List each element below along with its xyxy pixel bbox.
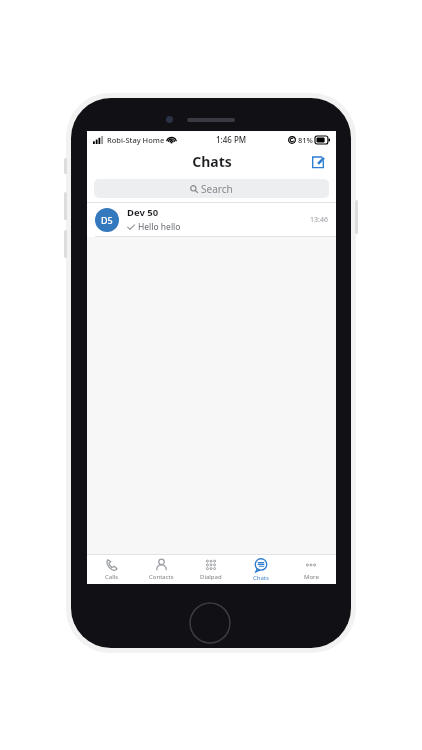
staticText: Calls xyxy=(105,573,119,581)
button[interactable]: Contacts xyxy=(136,555,186,584)
staticText: 1:46 PM xyxy=(216,134,247,145)
staticText: Hello hello xyxy=(138,221,181,233)
staticText: Contacts xyxy=(149,573,174,581)
button[interactable]: Calls xyxy=(87,555,136,584)
other: Home xyxy=(189,602,231,644)
button[interactable]: Chats xyxy=(236,555,286,584)
staticText: Chats xyxy=(253,574,269,582)
staticText: Dev 50 xyxy=(127,206,159,219)
staticText: 81% xyxy=(298,135,313,145)
button[interactable]: More xyxy=(286,555,336,584)
staticText: Robi-Stay Home xyxy=(107,135,165,145)
button[interactable]: D5 xyxy=(87,203,336,237)
staticText: Dialpad xyxy=(200,573,222,581)
button[interactable]: Dialpad xyxy=(186,555,236,584)
staticText: More xyxy=(304,573,319,581)
button[interactable]: Search xyxy=(94,179,329,198)
staticText: D5 xyxy=(101,214,113,226)
button[interactable]: Compose new message xyxy=(308,152,328,172)
staticText: 13:46 xyxy=(310,215,328,225)
staticText: Chats xyxy=(192,152,232,171)
staticText: Search xyxy=(201,182,233,196)
